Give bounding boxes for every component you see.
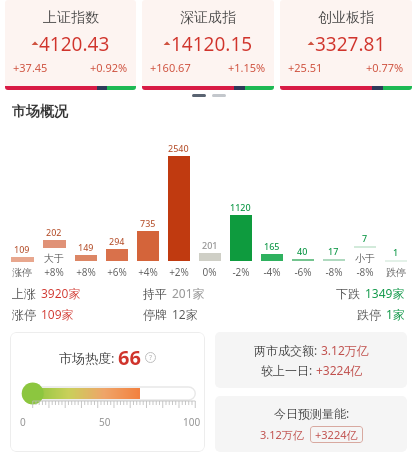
staticText: 涨停 [12, 307, 36, 322]
staticText: -8% [356, 265, 374, 279]
staticText: +8% [76, 265, 96, 279]
button[interactable]: 跌停 [274, 306, 405, 322]
staticText: +160.67 [150, 60, 191, 75]
staticText: 1120 [230, 201, 251, 213]
staticText: 50 [99, 415, 111, 429]
staticText: 下跌 [336, 286, 360, 301]
staticText: 165 [264, 240, 280, 252]
staticText: -4% [263, 265, 281, 279]
staticText: +6% [107, 265, 127, 279]
staticText: 4120.43 [39, 31, 110, 57]
staticText: 今日预测量能: [274, 405, 350, 421]
staticText: 149 [78, 241, 94, 253]
staticText: 创业板指 [318, 9, 374, 27]
staticText: 1家 [386, 306, 405, 322]
staticText: -2% [232, 265, 250, 279]
staticText: 1349家 [365, 285, 405, 301]
button[interactable]: 两市成交额: [215, 332, 407, 388]
button[interactable]: 201 [194, 129, 225, 279]
staticText: 跌停 [386, 266, 406, 279]
staticText: 两市成交额: [254, 342, 321, 358]
button[interactable]: 735 [132, 129, 163, 279]
button[interactable]: 下跌 [274, 285, 405, 301]
button[interactable]: 165 [256, 129, 287, 279]
staticText: 100 [183, 415, 201, 429]
staticText: +3224亿 [315, 427, 358, 442]
staticText: +1.15% [228, 60, 266, 75]
staticText: +8% [44, 265, 64, 279]
staticText: 跌停 [357, 307, 381, 322]
staticText: 201家 [172, 285, 205, 301]
staticText: 201 [202, 239, 218, 251]
staticText: -8% [325, 265, 343, 279]
button[interactable]: 深证成指 [142, 0, 274, 90]
staticText: 持平 [143, 286, 167, 301]
staticText: 深证成指 [180, 9, 236, 27]
staticText: 109家 [41, 306, 74, 322]
button[interactable]: 294 [101, 129, 132, 279]
staticText: 66 [118, 344, 141, 371]
button[interactable]: 停牌 [143, 306, 274, 322]
staticText: +37.45 [13, 60, 48, 75]
staticText: 17 [328, 245, 339, 257]
button[interactable]: 市场热度: [10, 332, 205, 452]
staticText: 3327.81 [315, 31, 386, 57]
staticText: +4% [138, 265, 158, 279]
button[interactable]: 2540 [163, 129, 194, 279]
staticText: 14120.15 [171, 31, 253, 57]
staticText: 大于 [44, 252, 64, 265]
button[interactable]: 创业板指 [280, 0, 412, 90]
button[interactable]: 1 [380, 129, 411, 279]
staticText: 2540 [168, 142, 189, 154]
button[interactable]: 17 [318, 129, 349, 279]
staticText: 735 [140, 217, 156, 229]
button[interactable]: 持平 [143, 285, 274, 301]
staticText: 0 [20, 415, 26, 429]
staticText: 涨停 [12, 266, 32, 279]
staticText: 小于 [355, 252, 375, 265]
staticText: -6% [294, 265, 312, 279]
staticText: 3920家 [41, 285, 81, 301]
staticText: +0.77% [366, 60, 404, 75]
staticText: 3.12万亿 [321, 342, 369, 358]
button[interactable]: 帮助 [145, 352, 156, 363]
staticText: 7 [362, 232, 368, 244]
staticText: 上证指数 [43, 9, 99, 27]
staticText: 3.12万亿 [260, 427, 304, 442]
button[interactable] [192, 94, 206, 97]
staticText: 0% [202, 265, 217, 279]
button[interactable]: 1120 [225, 129, 256, 279]
button[interactable]: 上涨 [12, 285, 143, 301]
button[interactable]: 7 [349, 129, 380, 279]
staticText: 1 [393, 246, 399, 258]
button[interactable]: 109 [6, 129, 38, 279]
button[interactable]: 今日预测量能: [215, 396, 407, 452]
staticText: 停牌 [143, 307, 167, 322]
staticText: 109 [14, 243, 30, 255]
staticText: 市场概况 [12, 103, 68, 121]
staticText: 市场热度: [59, 349, 118, 367]
staticText: +2% [169, 265, 189, 279]
staticText: +25.51 [288, 60, 323, 75]
button[interactable]: 涨停 [12, 306, 143, 322]
staticText: +0.92% [90, 60, 128, 75]
staticText: 40 [297, 245, 308, 257]
staticText: +3224亿 [316, 362, 363, 378]
staticText: 较上一日: [261, 362, 316, 378]
staticText: 12家 [172, 306, 198, 322]
staticText: 202 [46, 226, 62, 238]
staticText: ? [149, 353, 153, 363]
button[interactable]: 40 [287, 129, 318, 279]
button[interactable] [212, 94, 226, 97]
staticText: 上涨 [12, 286, 36, 301]
button[interactable]: 202 [38, 129, 70, 279]
staticText: 294 [109, 235, 125, 247]
button[interactable]: 上证指数 [5, 0, 136, 90]
button[interactable]: 149 [70, 129, 101, 279]
